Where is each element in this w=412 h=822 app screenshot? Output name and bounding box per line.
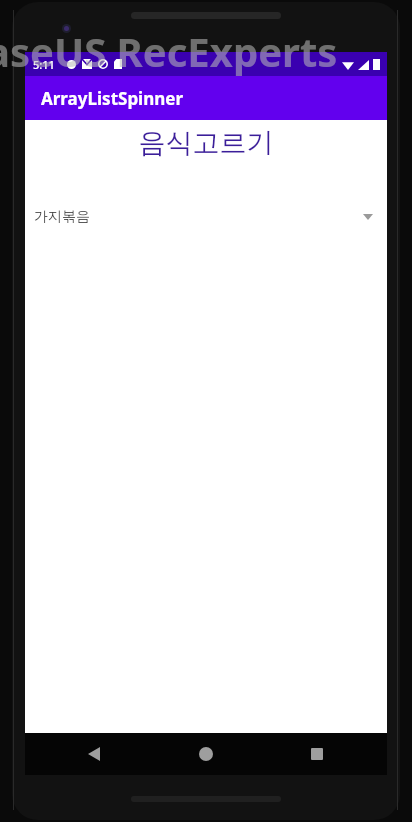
- other: Open dropdown: [363, 214, 373, 220]
- staticText: 5:11: [33, 57, 55, 72]
- staticText: 가지볶음: [34, 208, 90, 226]
- button[interactable]: Back: [88, 747, 100, 761]
- button[interactable]: 가지볶음: [25, 200, 387, 234]
- button[interactable]: Home: [199, 747, 213, 761]
- staticText: aseUS RecExperts: [0, 24, 338, 78]
- button[interactable]: Recent apps: [311, 748, 323, 760]
- staticText: 음식고르기: [25, 126, 387, 160]
- staticText: ArrayListSpinner: [41, 87, 184, 110]
